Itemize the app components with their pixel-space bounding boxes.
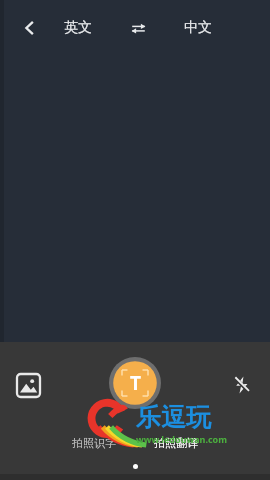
button[interactable]: 中文 — [174, 11, 222, 45]
button[interactable]: Gallery — [8, 365, 48, 405]
staticText: 中文 — [184, 19, 212, 37]
staticText: 英文 — [64, 19, 92, 37]
button[interactable]: 拍照翻译 — [142, 431, 210, 455]
staticText: 乐逗玩 — [136, 402, 211, 433]
button[interactable]: Back — [8, 6, 52, 50]
button[interactable]: Capture and translate text — [109, 357, 161, 409]
staticText: 拍照识字 — [72, 436, 116, 450]
button[interactable]: Swap languages — [120, 10, 156, 46]
button[interactable]: 拍照识字 — [60, 431, 128, 455]
button[interactable]: 英文 — [54, 11, 102, 45]
staticText: T — [130, 370, 141, 396]
staticText: 拍照翻译 — [154, 436, 198, 450]
button[interactable]: Flash off — [222, 365, 262, 405]
staticText: www.ledouwan.com — [136, 433, 228, 445]
